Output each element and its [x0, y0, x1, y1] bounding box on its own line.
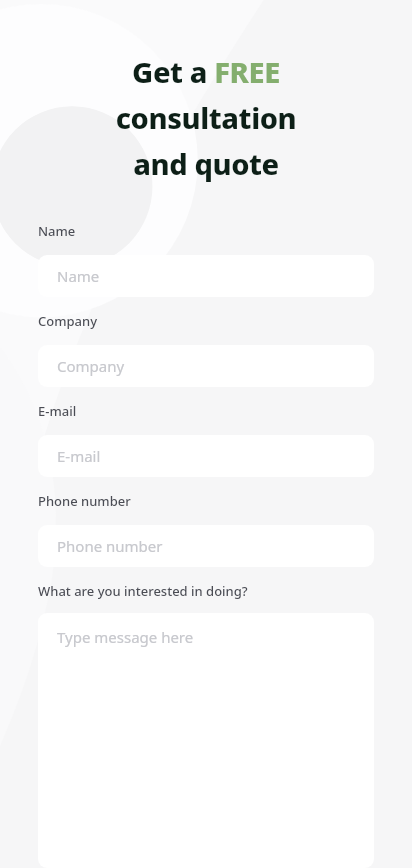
staticText: Type message here	[57, 627, 194, 647]
staticText: Name	[38, 222, 76, 240]
button[interactable]: E-mail	[38, 435, 374, 477]
button[interactable]: Message	[38, 613, 374, 868]
staticText: Get a FREE consultation and quote	[16, 52, 396, 184]
staticText: E-mail	[57, 446, 101, 466]
staticText: Phone number	[57, 536, 163, 556]
staticText: E-mail	[38, 402, 77, 420]
staticText: Company	[57, 356, 125, 376]
button[interactable]: Phone number	[38, 525, 374, 567]
staticText: Name	[57, 266, 100, 286]
staticText: Phone number	[38, 492, 131, 510]
staticText: What are you interested in doing?	[38, 582, 248, 600]
staticText: Company	[38, 312, 98, 330]
button[interactable]: Name	[38, 255, 374, 297]
button[interactable]: Company	[38, 345, 374, 387]
